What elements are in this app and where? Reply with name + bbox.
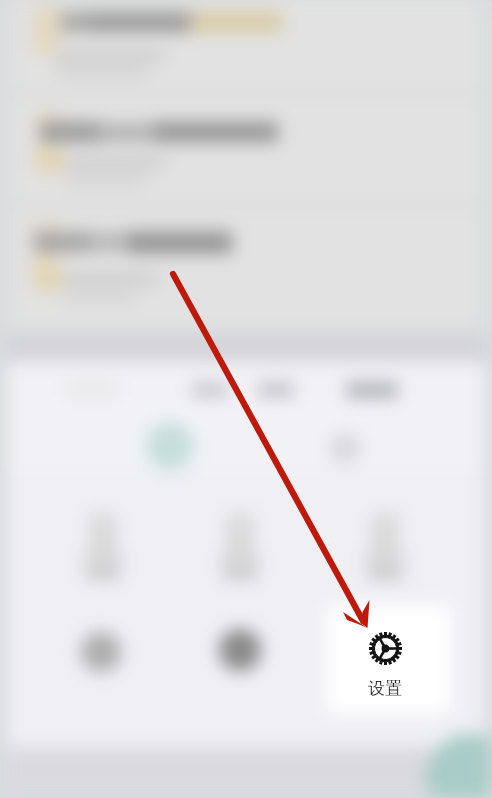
button[interactable]: 设置 <box>300 600 470 714</box>
staticText: 设置 <box>368 678 402 699</box>
